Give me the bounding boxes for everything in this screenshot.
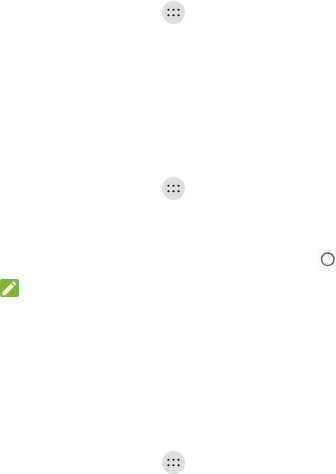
button[interactable]: More options — [162, 1, 185, 24]
button[interactable]: Edit — [0, 279, 19, 297]
button[interactable]: Apps — [162, 177, 185, 200]
button[interactable]: Menu — [162, 451, 185, 474]
button[interactable]: Select option — [318, 249, 336, 268]
